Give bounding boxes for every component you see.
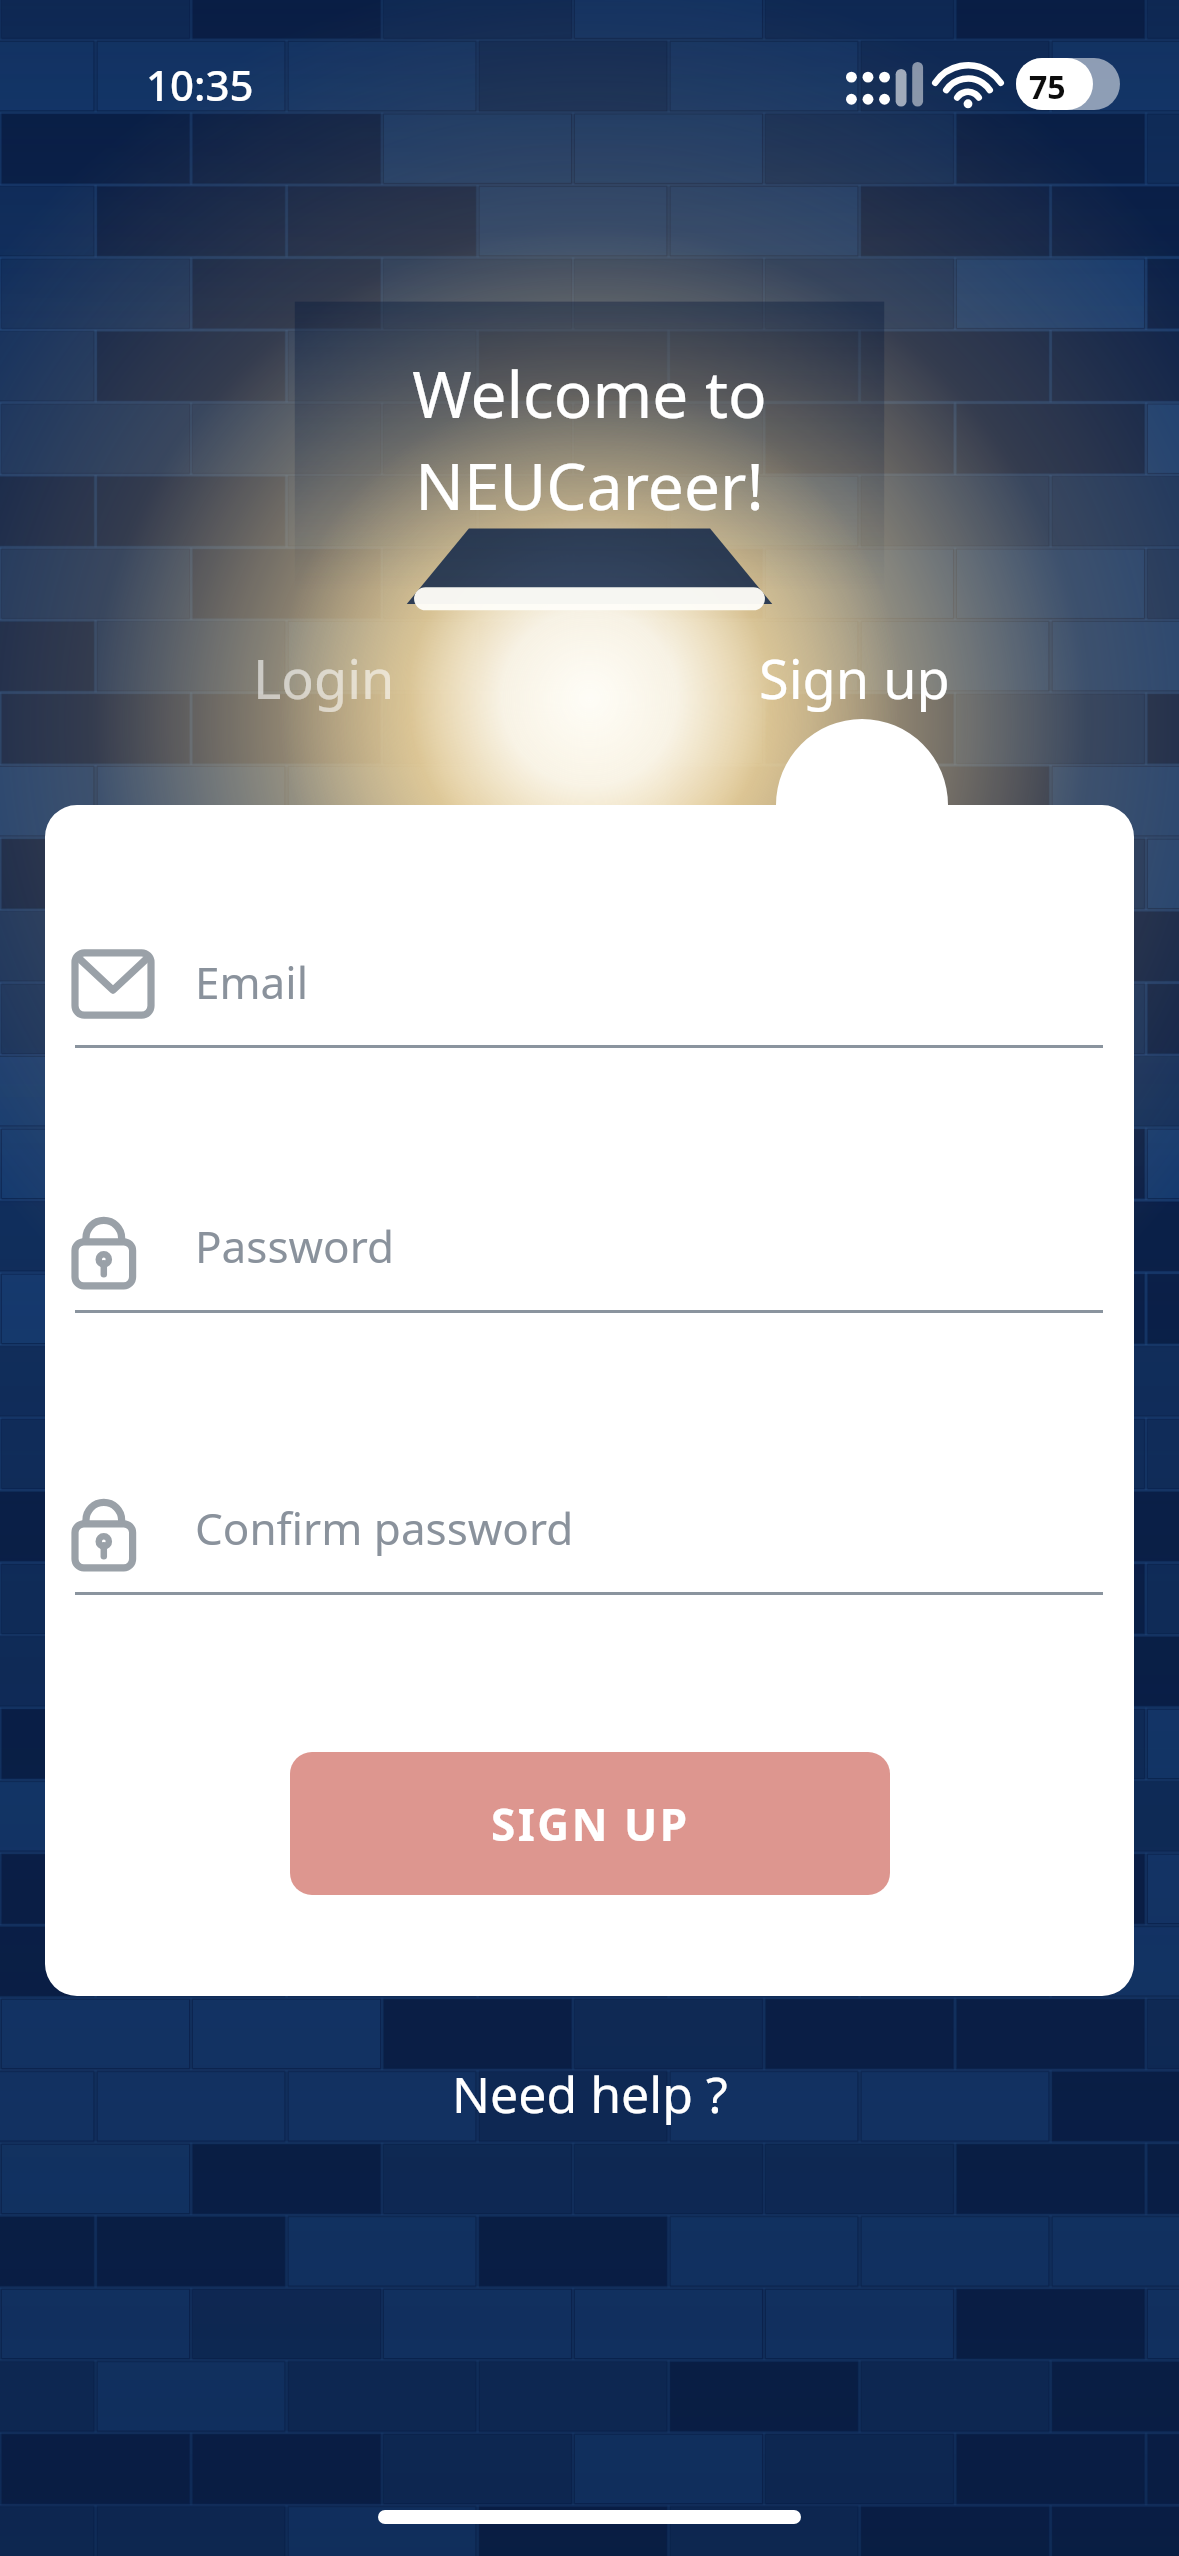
button[interactable]: SIGN UP bbox=[290, 1752, 890, 1895]
staticText: SIGN UP bbox=[491, 1794, 690, 1854]
staticText: Login bbox=[253, 641, 395, 715]
staticText: 10:35 bbox=[146, 56, 254, 113]
button[interactable]: Email bbox=[75, 938, 1103, 1085]
staticText: Welcome to NEUCareer! bbox=[0, 350, 1179, 529]
staticText: Email bbox=[195, 952, 308, 1012]
button[interactable]: Login bbox=[58, 628, 589, 728]
button[interactable]: Confirm password bbox=[75, 1485, 1103, 1632]
staticText: Password bbox=[195, 1216, 395, 1276]
button[interactable]: Sign up bbox=[589, 628, 1120, 728]
button[interactable]: Need help ? bbox=[440, 2048, 740, 2140]
staticText: 75 bbox=[1029, 65, 1066, 109]
staticText: Sign up bbox=[759, 641, 950, 715]
button[interactable]: Password bbox=[75, 1203, 1103, 1350]
staticText: Need help ? bbox=[452, 2060, 728, 2128]
staticText: Confirm password bbox=[195, 1498, 574, 1558]
